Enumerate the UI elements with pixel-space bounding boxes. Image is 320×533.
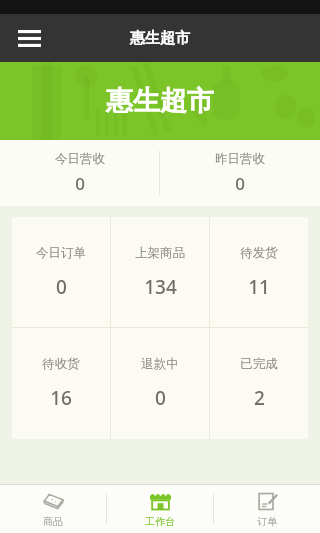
staticText: 16 xyxy=(50,385,72,411)
button[interactable]: 昨日营收 xyxy=(160,140,320,206)
staticText: 惠生超市 xyxy=(130,29,190,48)
staticText: 今日营收 xyxy=(55,151,105,167)
staticText: 2 xyxy=(254,385,265,411)
staticText: 惠生超市 xyxy=(106,84,214,118)
staticText: 待发货 xyxy=(240,245,278,261)
staticText: 今日订单 xyxy=(36,245,86,261)
button[interactable]: 今日订单 xyxy=(12,217,110,327)
button[interactable]: 退款中 xyxy=(111,328,209,439)
button[interactable]: Open navigation menu xyxy=(9,18,49,58)
staticText: 上架商品 xyxy=(135,245,185,261)
staticText: 昨日营收 xyxy=(215,151,265,167)
button[interactable]: 订单 xyxy=(214,485,320,533)
staticText: 商品 xyxy=(43,515,63,528)
staticText: 已完成 xyxy=(240,356,278,372)
staticText: 11 xyxy=(248,274,270,300)
button[interactable]: 工作台 xyxy=(107,485,213,533)
staticText: 订单 xyxy=(257,515,277,528)
staticText: 0 xyxy=(56,274,67,300)
staticText: 0 xyxy=(235,172,245,195)
button[interactable]: 待发货 xyxy=(210,217,308,327)
staticText: 退款中 xyxy=(141,356,179,372)
staticText: 0 xyxy=(155,385,166,411)
staticText: 待收货 xyxy=(42,356,80,372)
button[interactable]: 待收货 xyxy=(12,328,110,439)
button[interactable]: 商品 xyxy=(0,485,106,533)
button[interactable]: 今日营收 xyxy=(0,140,159,206)
button[interactable]: 上架商品 xyxy=(111,217,209,327)
button[interactable]: 已完成 xyxy=(210,328,308,439)
staticText: 0 xyxy=(75,172,85,195)
staticText: 134 xyxy=(144,274,177,300)
staticText: 工作台 xyxy=(145,515,175,528)
